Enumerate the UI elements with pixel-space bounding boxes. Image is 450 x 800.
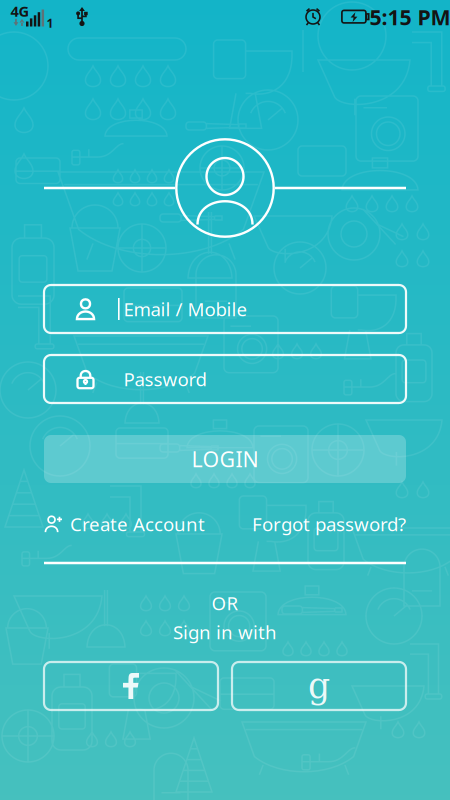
staticText: Sign in with bbox=[173, 620, 277, 644]
staticText: 1 bbox=[46, 15, 53, 31]
button[interactable]: Sign in with Facebook bbox=[44, 662, 218, 710]
staticText: Forgot password? bbox=[252, 512, 406, 536]
button[interactable]: Create Account bbox=[44, 511, 205, 537]
staticText: LOGIN bbox=[191, 445, 258, 473]
staticText: 4G bbox=[10, 1, 29, 21]
staticText: Password bbox=[124, 367, 207, 391]
button[interactable]: Email / Mobile bbox=[44, 285, 406, 333]
button[interactable]: LOGIN bbox=[44, 435, 406, 483]
button[interactable]: Sign in with Google bbox=[232, 662, 406, 710]
staticText: g bbox=[308, 666, 330, 706]
staticText: OR bbox=[211, 591, 238, 615]
button[interactable]: Password bbox=[44, 355, 406, 403]
staticText: Create Account bbox=[70, 512, 205, 536]
button[interactable]: Forgot password? bbox=[252, 511, 406, 537]
staticText: Email / Mobile bbox=[124, 297, 248, 321]
staticText: 5:15 PM bbox=[369, 3, 450, 31]
